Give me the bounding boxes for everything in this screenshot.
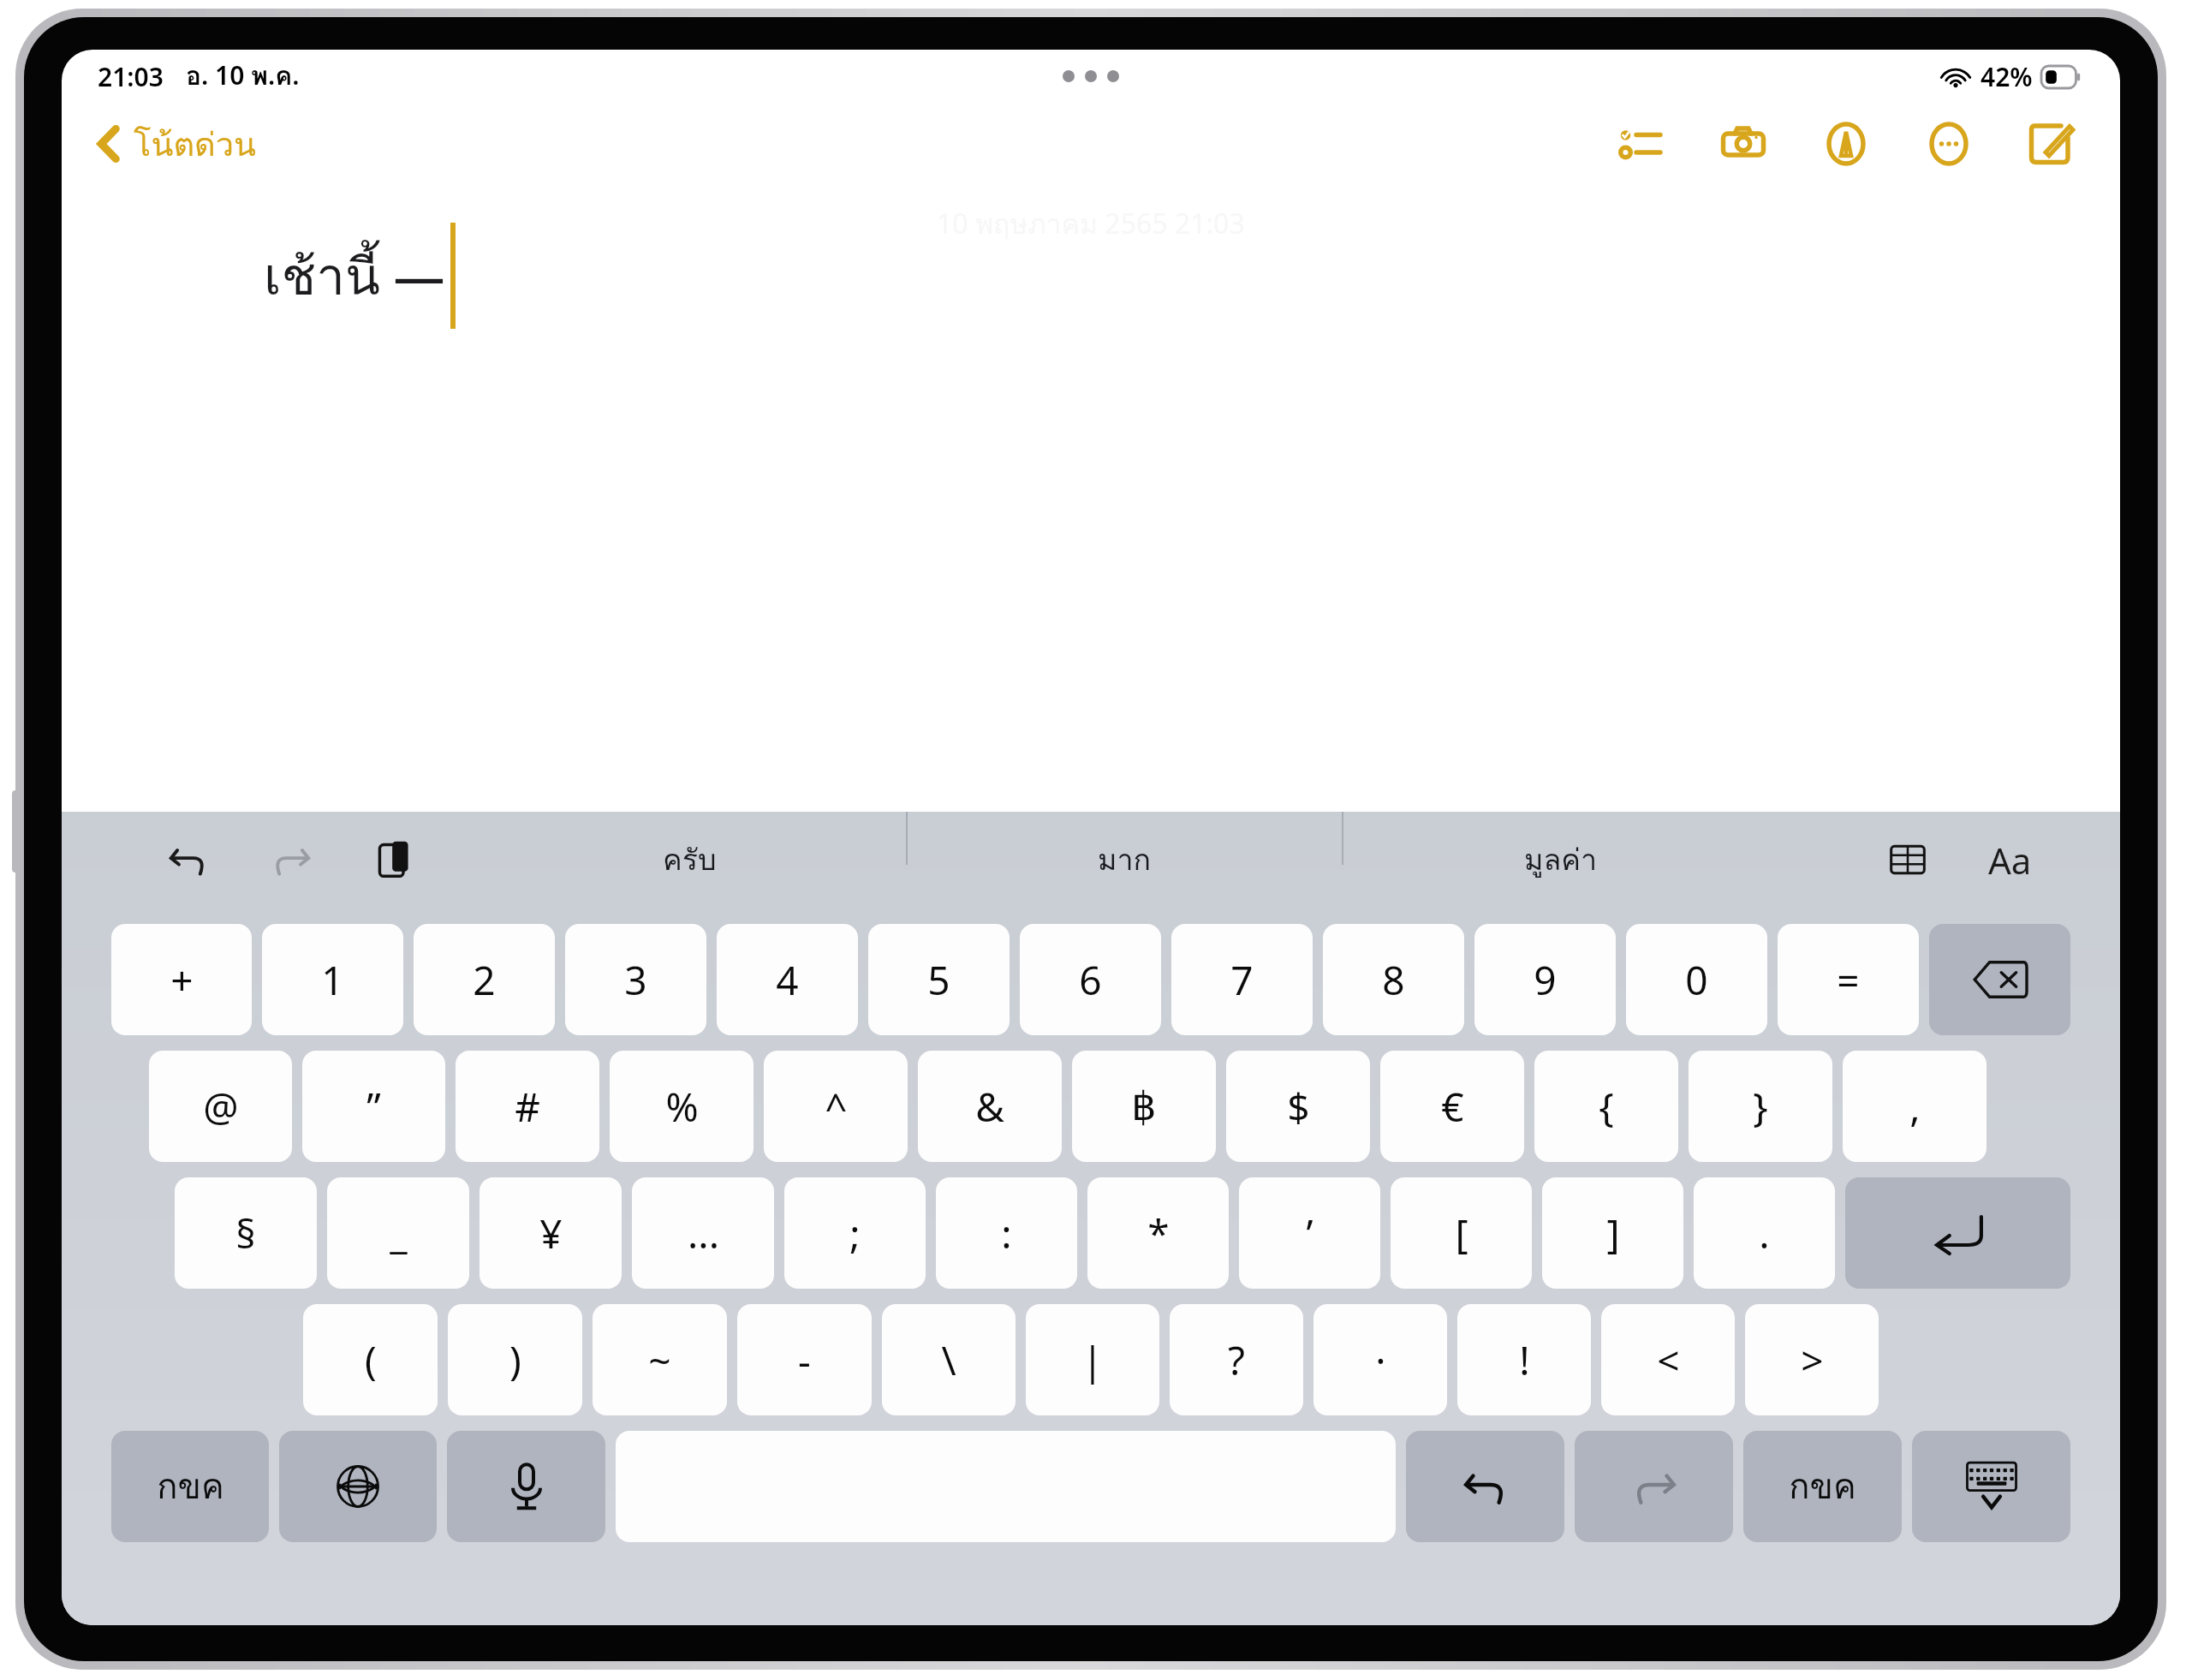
button[interactable]: | [1026, 1304, 1159, 1415]
staticText: ! [1519, 1333, 1530, 1387]
button[interactable]: Redo [1575, 1431, 1733, 1542]
button[interactable]: € [1380, 1051, 1524, 1162]
button[interactable]: Return [1845, 1177, 2070, 1289]
staticText: = [1837, 953, 1860, 1007]
button[interactable]: Undo [156, 827, 221, 892]
staticText: ^ [825, 1080, 848, 1134]
staticText: 3 [624, 953, 647, 1007]
staticText: € [1441, 1080, 1464, 1134]
button[interactable]: Next keyboard [279, 1431, 437, 1542]
button[interactable]: : [936, 1177, 1077, 1289]
button[interactable]: ~ [593, 1304, 727, 1415]
button[interactable]: Redo [259, 827, 324, 892]
button[interactable]: + [111, 924, 252, 1035]
button[interactable]: # [456, 1051, 599, 1162]
button[interactable]: ” [302, 1051, 445, 1162]
button[interactable]: Camera [1712, 113, 1774, 175]
button[interactable]: . [1694, 1177, 1835, 1289]
button[interactable]: ’ [1239, 1177, 1380, 1289]
button[interactable]: - [737, 1304, 872, 1415]
button[interactable]: % [610, 1051, 753, 1162]
button[interactable]: Dictation [447, 1431, 605, 1542]
button[interactable]: Backspace [1929, 924, 2070, 1035]
button[interactable]: } [1689, 1051, 1832, 1162]
button[interactable]: 8 [1323, 924, 1464, 1035]
button[interactable]: ^ [764, 1051, 908, 1162]
button[interactable]: Aa [1978, 832, 2041, 887]
staticText: - [798, 1333, 811, 1387]
staticText: 21:03 [98, 59, 164, 94]
staticText: ~ [648, 1333, 671, 1387]
button[interactable]: Paste [361, 827, 426, 892]
staticText: > [1801, 1333, 1824, 1387]
button[interactable]: 5 [868, 924, 1010, 1035]
button[interactable]: ฿ [1072, 1051, 1216, 1162]
button[interactable]: ¥ [479, 1177, 622, 1289]
button[interactable]: ? [1170, 1304, 1303, 1415]
button[interactable]: 6 [1020, 924, 1161, 1035]
staticText: $ [1287, 1080, 1310, 1134]
button[interactable]: > [1745, 1304, 1879, 1415]
button[interactable]: New Note [2021, 113, 2082, 175]
button[interactable]: ) [448, 1304, 582, 1415]
staticText: . [1759, 1206, 1770, 1260]
button[interactable]: มาก [908, 812, 1342, 908]
staticText: [ [1455, 1206, 1468, 1260]
button[interactable]: · [1313, 1304, 1447, 1415]
button[interactable]: ครับ [473, 812, 906, 908]
button[interactable]: Markup [1815, 113, 1877, 175]
button[interactable]: More [1918, 113, 1980, 175]
button[interactable]: * [1087, 1177, 1229, 1289]
button[interactable]: 0 [1626, 924, 1767, 1035]
staticText: กขค [157, 1459, 224, 1514]
staticText: 9 [1534, 953, 1557, 1007]
button[interactable]: 7 [1171, 924, 1313, 1035]
button[interactable]: 2 [414, 924, 555, 1035]
button[interactable]: § [175, 1177, 317, 1289]
button[interactable]: { [1534, 1051, 1678, 1162]
button[interactable]: & [918, 1051, 1062, 1162]
staticText: 6 [1079, 953, 1102, 1007]
staticText: ... [688, 1206, 719, 1260]
staticText: # [515, 1080, 540, 1134]
button[interactable]: 4 [717, 924, 858, 1035]
button[interactable]: ( [303, 1304, 438, 1415]
button[interactable]: $ [1226, 1051, 1370, 1162]
button[interactable]: ! [1457, 1304, 1591, 1415]
staticText: , [1909, 1080, 1921, 1134]
staticText: มาก [1098, 837, 1152, 883]
button[interactable]: ] [1542, 1177, 1683, 1289]
button[interactable]: @ [149, 1051, 292, 1162]
button[interactable]: กขค [1743, 1431, 1902, 1542]
button[interactable]: Table [1875, 827, 1940, 892]
staticText: 8 [1382, 953, 1405, 1007]
staticText: ฿ [1131, 1083, 1157, 1129]
staticText: _ [390, 1206, 408, 1260]
button[interactable]: 3 [565, 924, 706, 1035]
button[interactable]: = [1778, 924, 1919, 1035]
button[interactable]: \ [882, 1304, 1016, 1415]
staticText: ( [365, 1333, 377, 1387]
button[interactable]: ... [632, 1177, 774, 1289]
button[interactable]: โน้ตด่วน [86, 111, 269, 176]
staticText: < [1657, 1333, 1680, 1387]
staticText: 4 [776, 953, 799, 1007]
staticText: \ [941, 1333, 956, 1387]
button[interactable]: 9 [1474, 924, 1616, 1035]
button[interactable]: _ [327, 1177, 469, 1289]
button[interactable]: < [1601, 1304, 1735, 1415]
button[interactable]: 10 พฤษภาคม 2565 21:03 [62, 185, 2120, 812]
button[interactable]: กขค [111, 1431, 269, 1542]
button[interactable]: Undo [1406, 1431, 1564, 1542]
button[interactable]: มูลค่า [1343, 812, 1778, 908]
button[interactable]: [ [1391, 1177, 1532, 1289]
button[interactable]: 1 [262, 924, 403, 1035]
button[interactable]: , [1843, 1051, 1986, 1162]
staticText: เช้านี้ — [264, 235, 445, 317]
button[interactable]: ; [784, 1177, 926, 1289]
button[interactable]: Checklist [1610, 113, 1671, 175]
button[interactable]: Hide keyboard [1912, 1431, 2070, 1542]
staticText: Aa [1988, 836, 2032, 885]
